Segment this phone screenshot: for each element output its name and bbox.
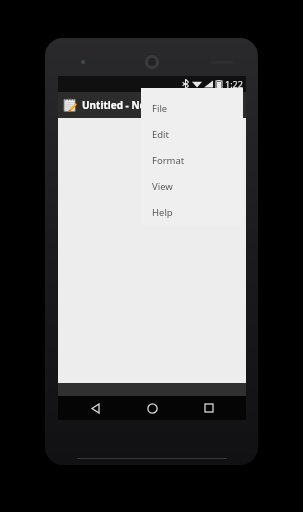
staticText: Edit [152, 128, 170, 141]
staticText: File [152, 102, 168, 115]
button[interactable]: Format [141, 147, 243, 173]
button[interactable]: File [141, 95, 243, 121]
button[interactable]: Edit [141, 121, 243, 147]
button[interactable]: Recent apps [189, 396, 229, 420]
button[interactable]: Help [141, 199, 243, 225]
button[interactable]: Home [132, 396, 172, 420]
staticText: View [152, 180, 173, 193]
staticText: 1:22 [225, 78, 243, 90]
button[interactable]: Back [75, 396, 115, 420]
button[interactable]: View [141, 173, 243, 199]
staticText: Format [152, 154, 185, 167]
staticText: Help [152, 206, 173, 219]
staticText: Untitled - Notepad [82, 98, 175, 112]
